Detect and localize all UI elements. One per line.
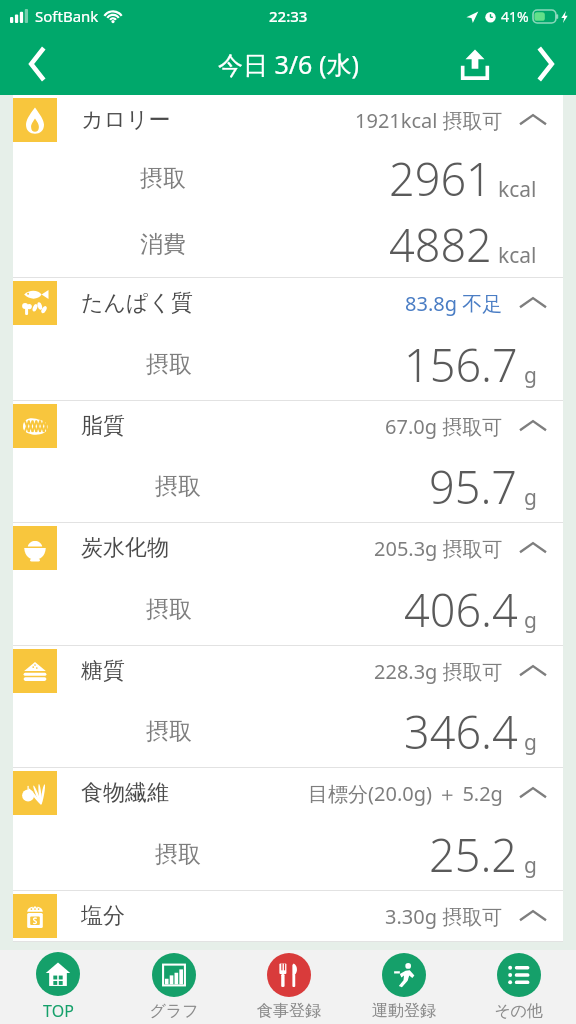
button[interactable]: Share [436,32,514,95]
staticText: 摂取 [155,472,201,501]
staticText: 4882 [389,214,492,275]
button[interactable]: 糖質 [13,646,563,696]
staticText: 摂取 [140,164,186,193]
staticText: g [524,361,537,390]
staticText: 228.3g 摂取可 [374,658,503,685]
staticText: 2961 [389,148,492,209]
staticText: 今日 3/6 (水) [218,47,359,81]
staticText: 脂質 [81,412,125,440]
staticText: その他 [494,1001,543,1021]
button[interactable]: 脂質 [13,401,563,451]
button[interactable]: 食物繊維 [13,768,563,818]
staticText: 22:33 [269,6,308,26]
staticText: 95.7 [429,456,518,517]
staticText: 346.4 [404,701,518,762]
button[interactable]: たんぱく質 [13,278,563,328]
button[interactable]: Previous day [0,32,76,95]
staticText: TOP [43,1000,74,1022]
staticText: SoftBank [35,6,99,26]
button[interactable]: 塩分 [13,891,563,941]
staticText: 67.0g 摂取可 [385,413,503,440]
button[interactable]: カロリー [13,95,563,145]
staticText: 摂取 [146,595,192,624]
staticText: g [524,728,537,757]
staticText: 41% [501,7,529,26]
staticText: 406.4 [404,579,518,640]
staticText: g [524,851,537,880]
button[interactable]: グラフ [116,950,231,1024]
staticText: カロリー [81,106,171,134]
staticText: 食物繊維 [81,779,169,807]
button[interactable]: 炭水化物 [13,523,563,573]
staticText: 1921kcal 摂取可 [355,107,503,134]
staticText: 3.30g 摂取可 [385,903,503,930]
staticText: 糖質 [81,657,125,685]
staticText: 156.7 [404,334,518,395]
staticText: 塩分 [81,902,125,930]
button[interactable]: 運動登録 [346,950,461,1024]
staticText: kcal [498,175,537,204]
staticText: g [524,606,537,635]
staticText: 目標分(20.0g) ＋ 5.2g [308,780,503,807]
staticText: グラフ [149,1001,199,1021]
button[interactable]: 食事登録 [231,950,346,1024]
staticText: 食事登録 [257,1001,321,1021]
staticText: 25.2 [429,824,518,885]
staticText: 摂取 [146,717,192,746]
staticText: たんぱく質 [81,289,194,317]
staticText: 205.3g 摂取可 [374,535,503,562]
button[interactable]: TOP [0,950,116,1024]
staticText: kcal [498,241,537,270]
staticText: 摂取 [155,840,201,869]
button[interactable]: Next day [514,32,576,95]
staticText: 炭水化物 [81,534,169,562]
staticText: 運動登録 [372,1001,436,1021]
staticText: 83.8g 不足 [405,290,503,317]
staticText: g [524,483,537,512]
button[interactable]: その他 [461,950,576,1024]
staticText: 消費 [140,230,186,259]
staticText: 摂取 [146,350,192,379]
